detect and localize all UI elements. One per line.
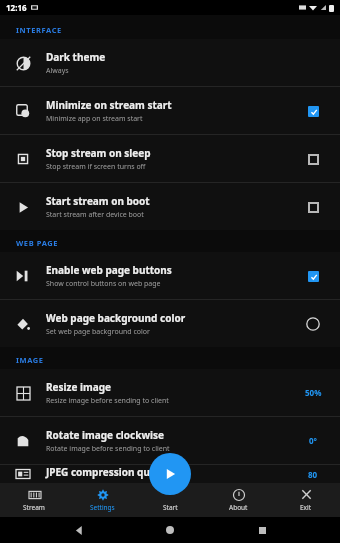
button[interactable]: Stream: [0, 483, 68, 517]
staticText: Resize image: [46, 380, 112, 394]
staticText: Minimize on stream start: [46, 98, 172, 112]
button[interactable]: Web page background color: [0, 300, 340, 347]
staticText: Enable web page buttons: [46, 263, 172, 277]
staticText: About: [229, 503, 248, 512]
staticText: 50%: [305, 387, 322, 398]
button[interactable]: Exit: [272, 483, 340, 517]
staticText: 80: [308, 469, 318, 480]
staticText: Exit: [300, 503, 312, 512]
button[interactable]: [302, 148, 324, 170]
staticText: Settings: [90, 503, 115, 512]
staticText: Always: [46, 66, 69, 76]
button[interactable]: Stop stream on sleep: [0, 135, 340, 182]
staticText: 12:16: [6, 2, 27, 13]
button[interactable]: Back: [66, 517, 92, 543]
staticText: Web page background color: [46, 311, 186, 325]
button[interactable]: JPEG compression quality: [0, 465, 340, 483]
button[interactable]: [302, 313, 324, 335]
button[interactable]: Settings: [68, 483, 136, 517]
staticText: Set web page background color: [46, 327, 150, 337]
button[interactable]: Resize image: [0, 369, 340, 416]
button[interactable]: Recents: [249, 517, 275, 543]
button[interactable]: Home: [157, 517, 183, 543]
staticText: WEB PAGE: [16, 238, 59, 248]
button[interactable]: [302, 265, 324, 287]
staticText: Minimize app on stream start: [46, 114, 143, 124]
button[interactable]: Start: [136, 483, 204, 517]
button[interactable]: Start stream on boot: [0, 183, 340, 230]
staticText: Resize image before sending to client: [46, 396, 169, 406]
button[interactable]: About: [204, 483, 272, 517]
button[interactable]: Rotate image clockwise: [0, 417, 340, 464]
staticText: Show control buttons on web page: [46, 279, 161, 289]
staticText: Stream: [23, 503, 45, 512]
button[interactable]: Start stream: [149, 453, 191, 495]
staticText: JPEG compression quality: [46, 465, 172, 479]
button[interactable]: Dark theme: [0, 39, 340, 86]
staticText: IMAGE: [16, 355, 44, 365]
button[interactable]: [302, 196, 324, 218]
staticText: Rotate image before sending to client: [46, 444, 170, 454]
staticText: Stop stream on sleep: [46, 146, 151, 160]
staticText: Dark theme: [46, 50, 106, 64]
staticText: Start stream after device boot: [46, 210, 144, 220]
staticText: Start: [163, 503, 178, 512]
staticText: 0°: [309, 435, 317, 446]
staticText: INTERFACE: [16, 25, 62, 35]
staticText: Rotate image clockwise: [46, 428, 164, 442]
button[interactable]: Enable web page buttons: [0, 252, 340, 299]
staticText: Start stream on boot: [46, 194, 150, 208]
staticText: Stop stream if screen turns off: [46, 162, 146, 172]
button[interactable]: Minimize on stream start: [0, 87, 340, 134]
button[interactable]: [302, 100, 324, 122]
